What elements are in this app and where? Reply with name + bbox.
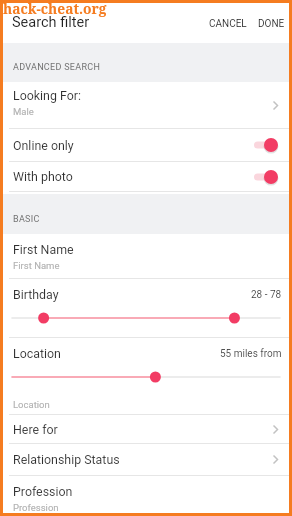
button[interactable]: Online only [3, 129, 289, 162]
other: Open [273, 455, 278, 464]
button[interactable]: Looking For: [3, 82, 289, 129]
staticText: Looking For: [13, 88, 81, 103]
staticText: First Name [13, 260, 60, 271]
button[interactable]: Relationship Status [3, 444, 289, 476]
button[interactable]: Profession [3, 476, 289, 515]
staticText: BASIC [13, 214, 40, 225]
staticText: ADVANCED SEARCH [13, 62, 101, 73]
staticText: hack-cheat.org [3, 0, 107, 18]
staticText: Relationship Status [13, 452, 120, 467]
button[interactable]: CANCEL [206, 11, 250, 37]
staticText: Online only [13, 138, 74, 153]
staticText: DONE [258, 18, 285, 30]
staticText: Here for [13, 422, 58, 437]
other: Open [273, 425, 278, 434]
staticText: CANCEL [209, 18, 247, 30]
staticText: 55 miles from [220, 348, 282, 360]
staticText: Birthday [13, 287, 59, 302]
staticText: Search filter [12, 14, 90, 31]
staticText: Profession [13, 484, 73, 499]
staticText: Location [13, 346, 61, 361]
staticText: Male [13, 106, 34, 117]
button[interactable]: DONE [255, 11, 289, 37]
staticText: First Name [13, 242, 74, 257]
staticText: 28 - 78 [251, 289, 282, 301]
button[interactable]: First Name [3, 234, 289, 279]
button[interactable]: Here for [3, 415, 289, 444]
button[interactable]: With photo [3, 162, 289, 192]
staticText: Profession [13, 502, 59, 513]
staticText: With photo [13, 169, 73, 184]
other: Online only [254, 137, 278, 153]
other: With photo [254, 169, 278, 185]
staticText: Location [13, 399, 50, 410]
other: Open [273, 101, 278, 110]
